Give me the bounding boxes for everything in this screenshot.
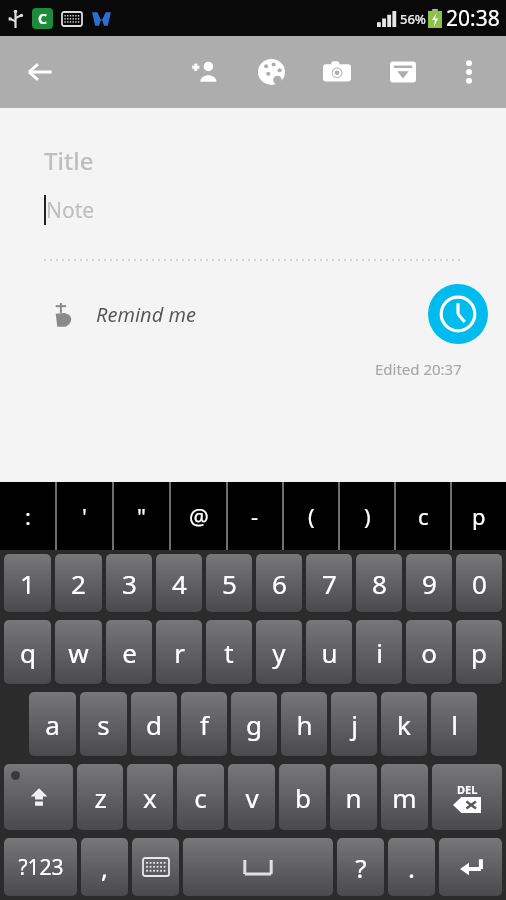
button[interactable]: Set reminder time [428, 284, 488, 344]
button[interactable]: . [388, 838, 435, 896]
button[interactable]: j [331, 692, 377, 756]
button[interactable]: 2 [55, 554, 102, 612]
button[interactable]: y [256, 620, 302, 684]
button[interactable]: 3 [106, 554, 152, 612]
button[interactable]: c [177, 764, 224, 830]
button[interactable]: k [381, 692, 427, 756]
button[interactable]: s [80, 692, 127, 756]
staticText: x [143, 780, 157, 815]
button[interactable]: ) [340, 482, 394, 550]
staticText: ' [82, 501, 87, 531]
staticText: . [408, 850, 415, 885]
button[interactable]: 9 [406, 554, 452, 612]
button[interactable]: r [156, 620, 202, 684]
button[interactable]: a [29, 692, 76, 756]
button[interactable]: Back [14, 46, 66, 98]
button[interactable]: b [279, 764, 326, 830]
staticText: @ [189, 501, 209, 531]
button[interactable]: Archive [370, 42, 436, 102]
staticText: d [146, 707, 162, 742]
staticText: z [94, 780, 107, 815]
staticText: " [137, 501, 146, 531]
button[interactable]: d [131, 692, 177, 756]
staticText: g [246, 707, 262, 742]
staticText: 20:38 [446, 4, 500, 33]
button[interactable]: 7 [306, 554, 352, 612]
staticText: 2 [71, 566, 86, 601]
staticText: v [245, 780, 259, 815]
button[interactable]: p [452, 482, 506, 550]
button[interactable]: ? [337, 838, 384, 896]
staticText: m [392, 780, 417, 815]
button[interactable]: ( [284, 482, 338, 550]
staticText: 3 [122, 566, 137, 601]
button[interactable]: 5 [206, 554, 252, 612]
button[interactable]: " [114, 482, 169, 550]
staticText: ?123 [18, 853, 64, 882]
staticText: ) [364, 501, 371, 531]
button[interactable]: g [231, 692, 277, 756]
button[interactable]: Space [183, 838, 333, 896]
button[interactable]: Add person [172, 42, 238, 102]
staticText: n [345, 780, 362, 815]
button[interactable]: h [281, 692, 327, 756]
button[interactable]: ' [57, 482, 112, 550]
button[interactable]: 0 [456, 554, 502, 612]
staticText: ( [308, 501, 315, 531]
staticText: q [20, 635, 36, 670]
staticText: 6 [272, 566, 287, 601]
button[interactable]: c [396, 482, 450, 550]
staticText: 0 [472, 566, 487, 601]
button[interactable]: , [81, 838, 128, 896]
button[interactable]: t [206, 620, 252, 684]
button[interactable]: x [127, 764, 173, 830]
staticText: : [25, 501, 31, 531]
button[interactable]: @ [171, 482, 226, 550]
button[interactable]: : [0, 482, 55, 550]
button[interactable]: More options [436, 42, 502, 102]
button[interactable]: 6 [256, 554, 302, 612]
button[interactable]: 1 [4, 554, 51, 612]
staticText: Title [44, 144, 94, 177]
button[interactable]: 4 [156, 554, 202, 612]
staticText: o [421, 635, 437, 670]
button[interactable]: w [55, 620, 102, 684]
button[interactable]: u [306, 620, 352, 684]
staticText: 7 [322, 566, 337, 601]
button[interactable]: 8 [356, 554, 402, 612]
button[interactable]: q [4, 620, 51, 684]
button[interactable]: - [228, 482, 282, 550]
button[interactable]: n [330, 764, 377, 830]
button[interactable]: v [228, 764, 275, 830]
staticText: C [38, 9, 47, 28]
staticText: l [451, 707, 458, 742]
button[interactable]: l [431, 692, 477, 756]
button[interactable]: e [106, 620, 152, 684]
button[interactable]: ?123 [4, 838, 77, 896]
button[interactable]: m [381, 764, 428, 830]
staticText: e [122, 635, 137, 670]
staticText: c [194, 780, 207, 815]
button[interactable]: Remind me [44, 295, 202, 334]
button[interactable]: o [406, 620, 452, 684]
staticText: h [296, 707, 313, 742]
button[interactable]: z [77, 764, 123, 830]
button[interactable]: Note [0, 191, 506, 229]
staticText: 56% [400, 10, 426, 28]
button[interactable]: p [456, 620, 502, 684]
staticText: DEL [457, 782, 478, 797]
button[interactable]: Add image [304, 42, 370, 102]
button[interactable]: Switch keyboard [132, 838, 179, 896]
staticText: i [376, 635, 383, 670]
staticText: f [200, 707, 209, 742]
button[interactable]: f [181, 692, 227, 756]
staticText: 5 [222, 566, 237, 601]
button[interactable]: Change color [238, 42, 304, 102]
button[interactable]: Enter [439, 838, 502, 896]
button[interactable]: Shift [4, 764, 73, 830]
staticText: y [272, 635, 286, 670]
button[interactable]: i [356, 620, 402, 684]
staticText: p [471, 635, 487, 670]
button[interactable]: Title [0, 138, 506, 183]
button[interactable]: Delete [432, 764, 502, 830]
